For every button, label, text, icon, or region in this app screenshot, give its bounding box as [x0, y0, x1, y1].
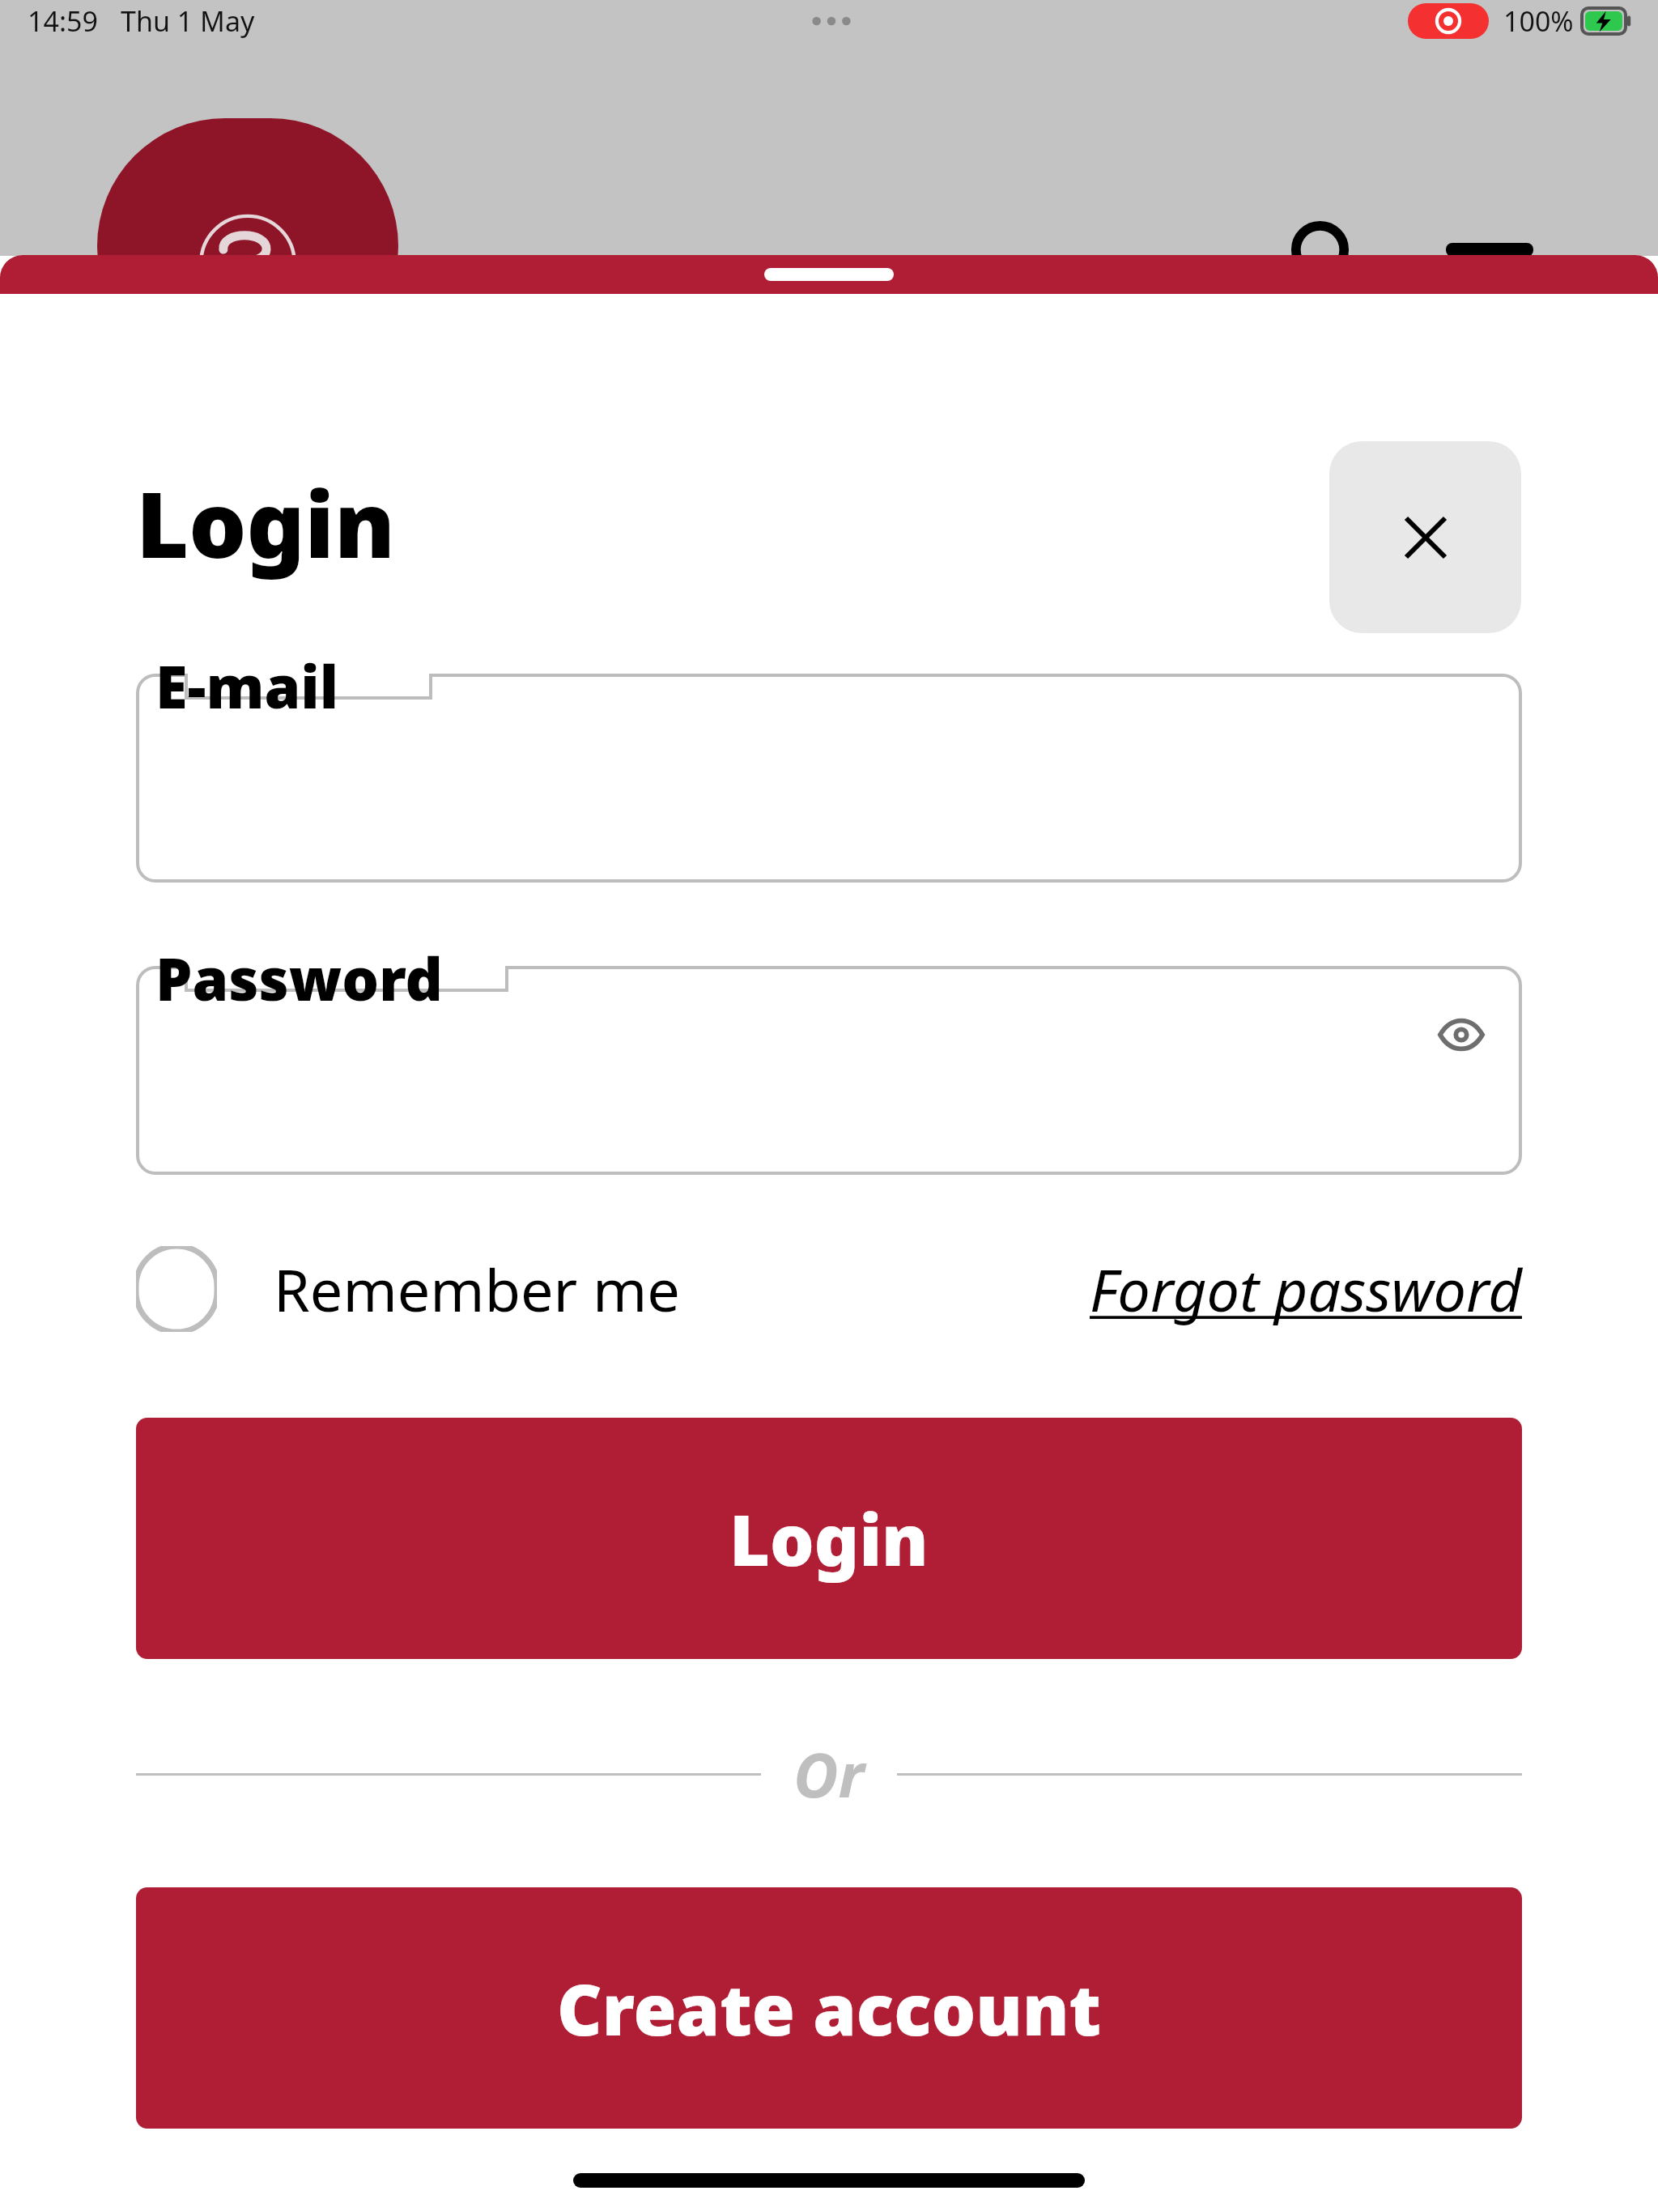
button[interactable]: E-mail — [136, 674, 1522, 883]
button[interactable]: Remember me — [136, 1246, 680, 1332]
staticText: Remember me — [274, 1249, 680, 1329]
staticText: E-mail — [155, 646, 338, 725]
staticText: Or — [793, 1732, 865, 1816]
button[interactable]: Password — [136, 966, 1522, 1175]
button[interactable]: Show password — [1433, 1006, 1490, 1063]
staticText: 100% — [1503, 2, 1574, 40]
button[interactable]: Close — [1329, 441, 1521, 633]
staticText: Thu 1 May — [121, 2, 255, 40]
button[interactable]: Forgot password — [1090, 1249, 1522, 1329]
button[interactable]: Search — [1287, 217, 1360, 290]
button[interactable]: Create account — [136, 1887, 1522, 2129]
staticText: Login — [729, 1491, 929, 1586]
staticText: Password — [155, 938, 443, 1018]
staticText: 14:59 — [28, 2, 98, 40]
button[interactable]: Login — [136, 1418, 1522, 1659]
staticText: Login — [136, 461, 395, 585]
button[interactable]: Menu — [1446, 243, 1533, 257]
staticText: Create account — [557, 1961, 1102, 2056]
